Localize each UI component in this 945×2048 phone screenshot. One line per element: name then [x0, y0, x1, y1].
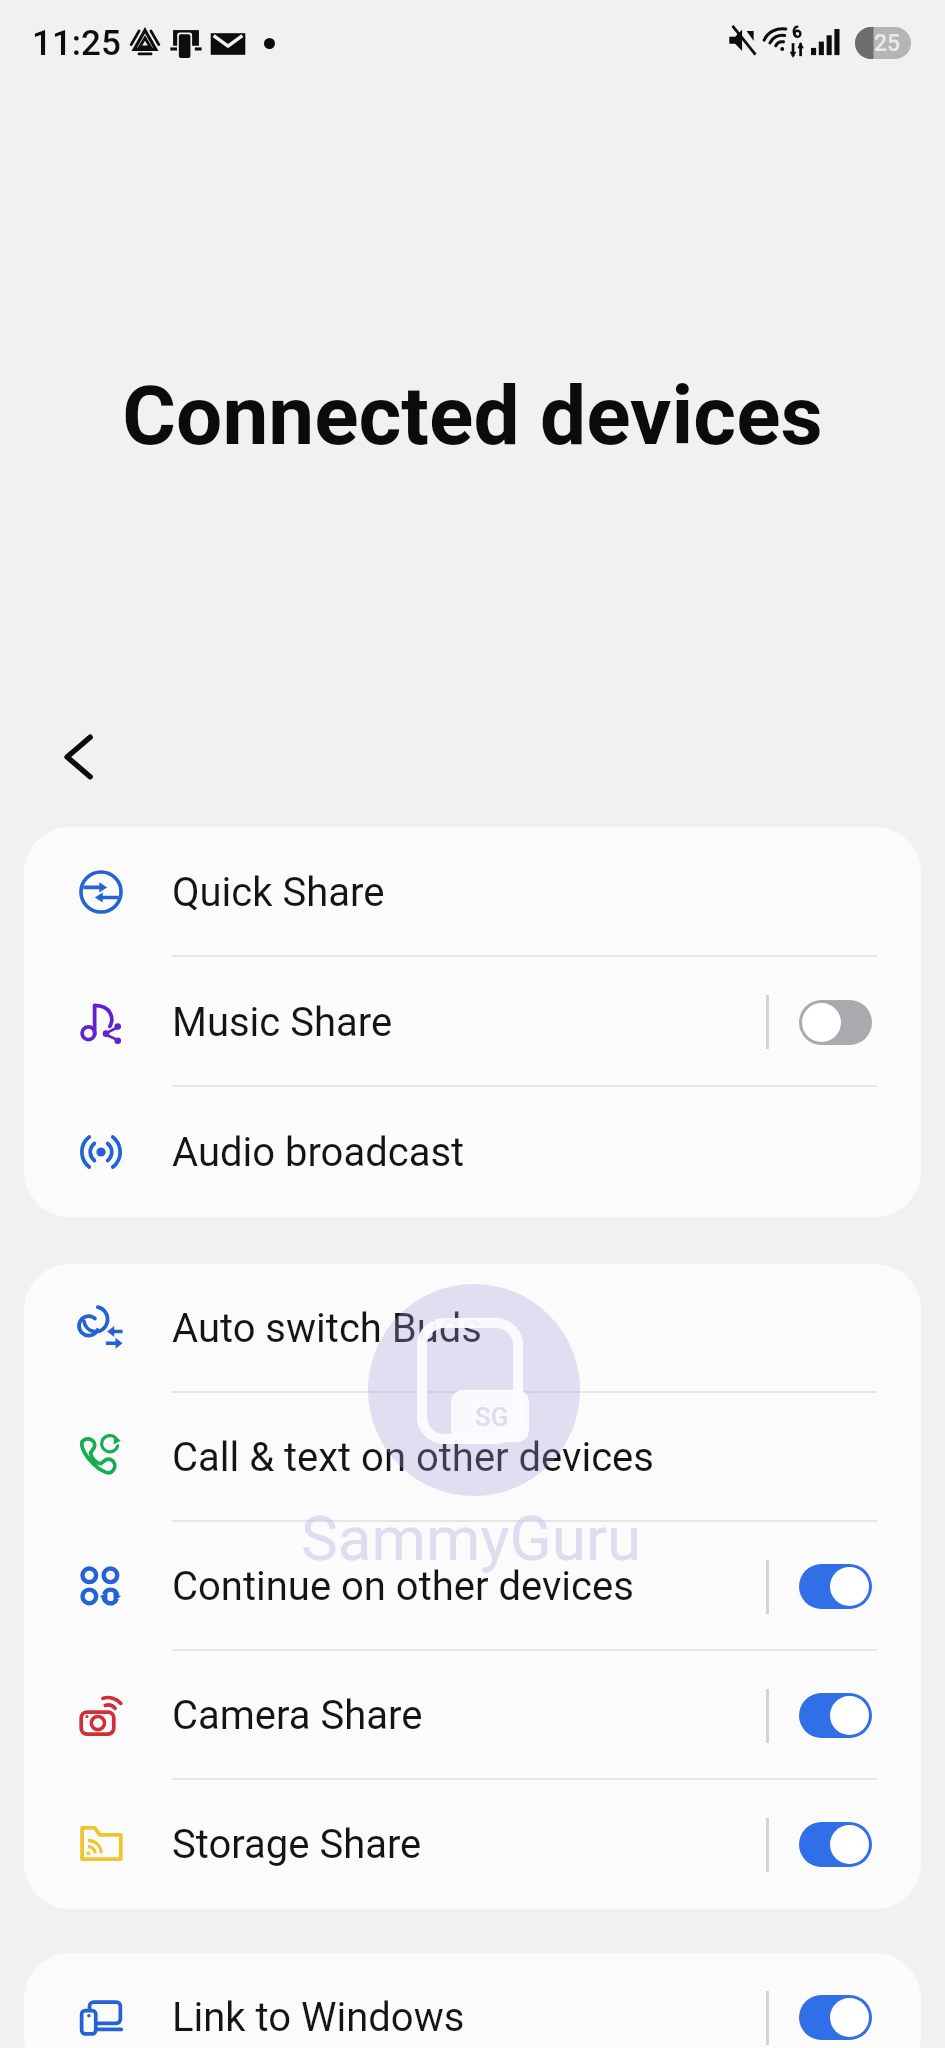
- staticText: Continue on other devices: [172, 1563, 766, 1610]
- staticText: Audio broadcast: [172, 1129, 921, 1176]
- button[interactable]: Continue on other devices: [24, 1522, 921, 1651]
- staticText: Call & text on other devices: [172, 1434, 921, 1481]
- button[interactable]: Auto switch Buds: [24, 1264, 921, 1393]
- staticText: 11:25: [32, 23, 121, 64]
- button[interactable]: Audio broadcast: [24, 1087, 921, 1217]
- staticText: Music Share: [172, 999, 766, 1046]
- button[interactable]: Call & text on other devices: [24, 1393, 921, 1522]
- button[interactable]: Switch on: [799, 1693, 872, 1738]
- staticText: SammyGuru: [301, 1502, 642, 1575]
- staticText: Quick Share: [172, 869, 921, 916]
- button[interactable]: Quick Share: [24, 827, 921, 957]
- button[interactable]: Link to Windows: [24, 1953, 921, 2048]
- button[interactable]: Switch on: [799, 1995, 872, 2040]
- staticText: SG: [475, 1402, 509, 1432]
- button[interactable]: Switch off: [799, 1000, 872, 1045]
- button[interactable]: Music Share: [24, 957, 921, 1087]
- button[interactable]: Switch on: [799, 1564, 872, 1609]
- staticText: 25: [874, 30, 901, 57]
- button[interactable]: Camera Share: [24, 1651, 921, 1780]
- staticText: Connected devices: [122, 368, 823, 464]
- button[interactable]: Navigate up: [44, 721, 116, 793]
- button[interactable]: Switch on: [799, 1822, 872, 1867]
- staticText: Auto switch Buds: [172, 1305, 921, 1352]
- button[interactable]: Storage Share: [24, 1780, 921, 1909]
- staticText: Link to Windows: [172, 1994, 766, 2041]
- staticText: Storage Share: [172, 1821, 766, 1868]
- staticText: Camera Share: [172, 1692, 766, 1739]
